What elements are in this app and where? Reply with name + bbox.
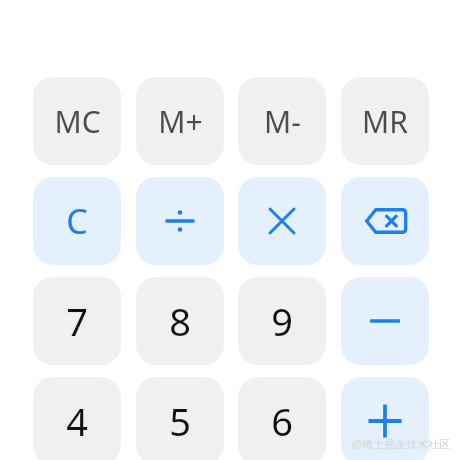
button[interactable]: 4 — [33, 377, 121, 460]
staticText: 6 — [271, 395, 293, 447]
staticText: M+ — [158, 101, 203, 142]
button[interactable]: M+ — [136, 77, 224, 165]
staticText: 4 — [66, 395, 88, 447]
staticText: 5 — [169, 395, 191, 447]
button[interactable]: MC — [33, 77, 121, 165]
button[interactable]: Minus — [341, 277, 429, 365]
button[interactable]: Backspace — [341, 177, 429, 265]
button[interactable]: 7 — [33, 277, 121, 365]
button[interactable]: 5 — [136, 377, 224, 460]
staticText: 9 — [271, 295, 293, 347]
button[interactable]: Multiply — [238, 177, 326, 265]
staticText: 7 — [66, 295, 88, 347]
button[interactable]: 8 — [136, 277, 224, 365]
button[interactable]: Plus — [341, 377, 429, 460]
staticText: MC — [54, 101, 101, 142]
button[interactable]: Divide — [136, 177, 224, 265]
staticText: @稀土掘金技术社区 — [352, 436, 450, 451]
staticText: MR — [362, 101, 408, 142]
staticText: 8 — [169, 295, 191, 347]
staticText: C — [66, 198, 88, 244]
staticText: M- — [264, 101, 301, 142]
button[interactable]: 6 — [238, 377, 326, 460]
button[interactable]: M- — [238, 77, 326, 165]
button[interactable]: C — [33, 177, 121, 265]
button[interactable]: MR — [341, 77, 429, 165]
button[interactable]: 9 — [238, 277, 326, 365]
